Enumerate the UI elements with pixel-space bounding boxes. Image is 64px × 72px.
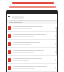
button[interactable]: Menu xyxy=(8,16,10,18)
button[interactable] xyxy=(7,64,57,71)
button[interactable] xyxy=(7,56,57,63)
button[interactable] xyxy=(7,32,57,39)
button[interactable] xyxy=(7,24,57,31)
button[interactable] xyxy=(7,40,57,47)
button[interactable] xyxy=(7,48,57,55)
